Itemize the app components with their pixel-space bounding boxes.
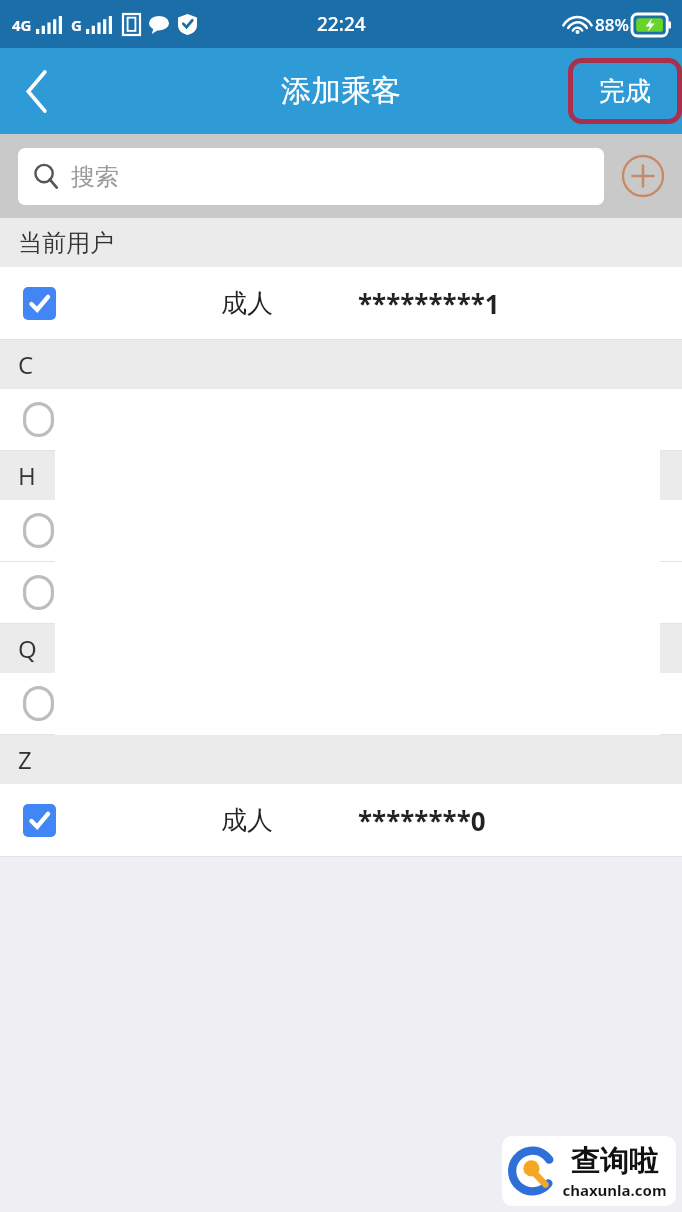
button[interactable] [0,500,682,561]
button[interactable] [0,562,682,623]
staticText: Q [18,632,37,665]
staticText: 成人 [221,287,273,320]
staticText: *********1 [358,286,500,321]
staticText: 完成 [599,75,651,108]
staticText: 4G [12,15,32,35]
button[interactable]: Add new passenger [604,137,682,215]
staticText: 22:24 [317,11,366,37]
staticText: H [18,459,36,492]
staticText: G [71,15,82,35]
staticText: 查询啦 [571,1143,658,1180]
staticText: 88% [595,13,629,36]
button[interactable]: 成人 [0,784,682,856]
button[interactable]: Back [0,48,74,134]
button[interactable] [0,673,682,734]
staticText: Z [18,743,32,776]
staticText: 搜索 [71,162,119,192]
button[interactable]: 完成 [568,58,682,124]
staticText: ********0 [358,803,486,838]
button[interactable] [0,389,682,450]
button[interactable]: 搜索 [18,148,604,205]
staticText: 添加乘客 [281,72,401,110]
staticText: 当前用户 [18,228,114,258]
staticText: chaxunla.com [562,1180,667,1200]
button[interactable]: 成人 [0,267,682,339]
staticText: C [18,348,34,381]
staticText: 成人 [221,804,273,837]
